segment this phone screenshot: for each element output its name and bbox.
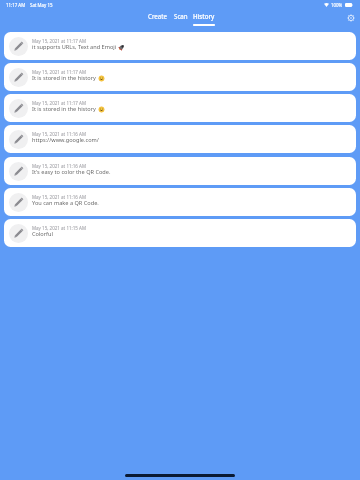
staticText: It is stored in the history bbox=[32, 105, 96, 113]
staticText: https://www.google.com/ bbox=[32, 136, 99, 144]
staticText: May 15, 2021 at 11:17 AM bbox=[32, 38, 87, 44]
staticText: It is stored in the history bbox=[32, 74, 96, 82]
button[interactable]: May 15, 2021 at 11:17 AM bbox=[4, 32, 356, 60]
staticText: May 15, 2021 at 11:16 AM bbox=[32, 163, 87, 169]
staticText: 11:17 AM bbox=[6, 2, 26, 8]
staticText: May 15, 2021 at 11:17 AM bbox=[32, 69, 87, 75]
staticText: You can make a QR Code. bbox=[32, 199, 99, 207]
button[interactable]: History bbox=[193, 12, 215, 26]
button[interactable]: May 15, 2021 at 11:16 AM bbox=[4, 125, 356, 153]
staticText: It's easy to color the QR Code. bbox=[32, 168, 111, 176]
staticText: 100% bbox=[331, 2, 343, 8]
button[interactable]: May 15, 2021 at 11:15 AM bbox=[4, 219, 356, 247]
staticText: Create bbox=[148, 12, 168, 20]
staticText: History bbox=[193, 12, 215, 20]
button[interactable]: May 15, 2021 at 11:17 AM bbox=[4, 94, 356, 122]
staticText: May 15, 2021 at 11:15 AM bbox=[32, 225, 87, 231]
button[interactable]: Scan bbox=[174, 12, 188, 24]
staticText: Colorful bbox=[32, 230, 53, 238]
button[interactable]: May 15, 2021 at 11:16 AM bbox=[4, 157, 356, 185]
staticText: May 15, 2021 at 11:16 AM bbox=[32, 131, 87, 137]
button[interactable]: Settings bbox=[343, 10, 358, 25]
button[interactable]: May 15, 2021 at 11:17 AM bbox=[4, 63, 356, 91]
button[interactable]: May 15, 2021 at 11:16 AM bbox=[4, 188, 356, 216]
button[interactable]: Create bbox=[148, 12, 168, 24]
staticText: Scan bbox=[174, 12, 188, 20]
staticText: May 15, 2021 at 11:16 AM bbox=[32, 194, 87, 200]
staticText: Sat May 15 bbox=[30, 2, 53, 8]
staticText: it supports URLs, Text and Emoji bbox=[32, 43, 117, 51]
staticText: May 15, 2021 at 11:17 AM bbox=[32, 100, 87, 106]
